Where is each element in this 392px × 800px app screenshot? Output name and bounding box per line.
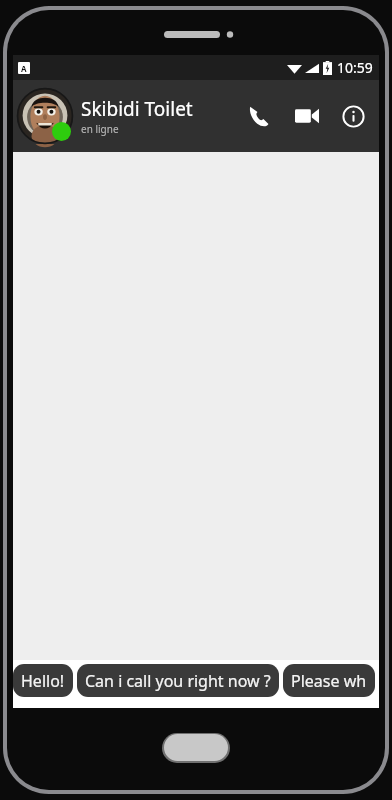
staticText: Hello! (21, 670, 65, 692)
staticText: Skibidi Toilet (81, 96, 193, 122)
button[interactable]: Contact info (333, 96, 373, 136)
staticText: en ligne (81, 122, 119, 136)
staticText: 10:59 (337, 58, 373, 77)
button[interactable]: Contact photo (17, 88, 73, 144)
button[interactable]: Hello! (13, 664, 73, 697)
staticText: A (21, 63, 27, 74)
staticText: Please wh (291, 670, 367, 692)
button[interactable]: Call (239, 96, 279, 136)
button[interactable]: Video call (287, 96, 327, 136)
staticText: Can i call you right now ? (85, 670, 271, 692)
button[interactable]: Can i call you right now ? (77, 664, 279, 697)
button[interactable]: Please wh (283, 664, 375, 697)
